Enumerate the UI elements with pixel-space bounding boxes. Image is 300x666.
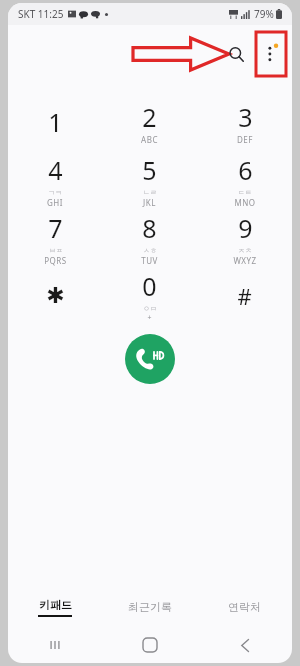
button[interactable]: 최근기록 [102, 587, 197, 627]
staticText: ㄴㄹ [143, 188, 157, 197]
button[interactable]: 1 [8, 93, 102, 151]
button[interactable]: 7 [8, 209, 102, 267]
staticText: ✱ [46, 283, 65, 309]
staticText: 6 [238, 153, 253, 187]
button[interactable]: 4 [8, 151, 102, 209]
staticText: WXYZ [233, 255, 257, 266]
staticText: TUV [141, 255, 158, 266]
button[interactable]: 3 [197, 93, 292, 151]
staticText: 7 [48, 211, 63, 245]
button[interactable]: 연락처 [197, 587, 292, 627]
staticText: PQRS [44, 255, 67, 266]
staticText: ㄱㅋ [48, 188, 62, 197]
staticText: 최근기록 [128, 600, 172, 614]
staticText: 키패드 [39, 598, 72, 612]
staticText: 4 [48, 153, 63, 187]
staticText: GHI [47, 197, 63, 208]
button[interactable]: Back [197, 627, 292, 663]
staticText: ㄷㅌ [238, 188, 252, 197]
staticText: SKT 11:25 [18, 7, 64, 21]
staticText: # [237, 281, 252, 311]
button[interactable]: 키패드 [8, 587, 102, 627]
staticText: 2 [142, 100, 157, 134]
button[interactable]: Call [125, 334, 175, 384]
button[interactable]: 0 [102, 267, 197, 325]
button[interactable]: 9 [197, 209, 292, 267]
staticText: 3 [238, 100, 253, 134]
button[interactable]: Search [220, 38, 252, 70]
staticText: 1 [48, 105, 63, 139]
button[interactable]: Home [102, 627, 197, 663]
button[interactable]: 2 [102, 93, 197, 151]
staticText: ABC [141, 134, 158, 145]
staticText: ㅈㅊ [238, 246, 252, 255]
button[interactable]: 8 [102, 209, 197, 267]
button[interactable]: 5 [102, 151, 197, 209]
button[interactable]: # [197, 267, 292, 325]
staticText: ㅅㅎ [143, 246, 157, 255]
staticText: DEF [237, 134, 253, 145]
staticText: JKL [143, 197, 156, 208]
button[interactable]: ✱ [8, 267, 102, 325]
button[interactable]: 6 [197, 151, 292, 209]
staticText: ㅂㅍ [49, 246, 63, 255]
staticText: 9 [238, 211, 253, 245]
staticText: 5 [142, 153, 157, 187]
staticText: + [147, 313, 152, 323]
staticText: ㅇㅁ [143, 304, 157, 313]
staticText: 8 [142, 211, 157, 245]
staticText: 79% [254, 7, 274, 21]
staticText: 0 [142, 269, 157, 303]
button[interactable]: Recents [8, 627, 102, 663]
staticText: 연락처 [228, 600, 261, 614]
staticText: MNO [234, 197, 256, 208]
button[interactable]: More options [256, 32, 286, 76]
